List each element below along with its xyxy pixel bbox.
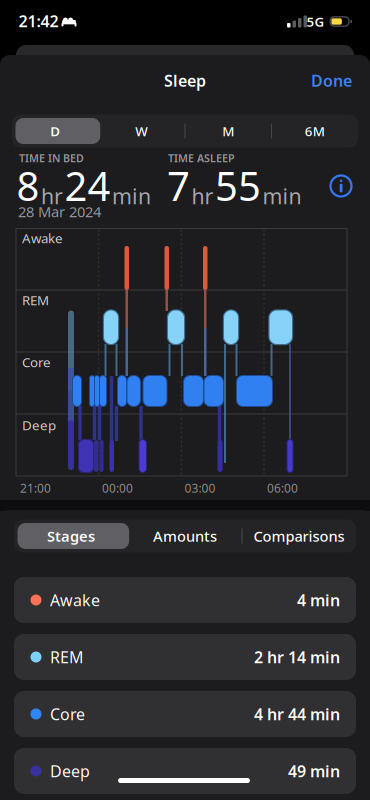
staticText: 4 min bbox=[297, 589, 340, 611]
staticText: 21:42 bbox=[18, 10, 58, 32]
staticText: 21:00 bbox=[20, 480, 51, 496]
button[interactable] bbox=[0, 0, 370, 800]
staticText: min bbox=[262, 182, 301, 210]
button[interactable]: 6M bbox=[0, 0, 370, 800]
staticText: W bbox=[135, 122, 148, 140]
staticText: Amounts bbox=[153, 526, 217, 546]
button[interactable] bbox=[0, 0, 370, 800]
staticText: Deep bbox=[22, 416, 56, 434]
button[interactable]: REM bbox=[0, 0, 370, 800]
staticText: 4 hr 44 min bbox=[254, 703, 340, 725]
staticText: 8 bbox=[16, 159, 39, 212]
staticText: min bbox=[112, 182, 151, 210]
button[interactable]: D bbox=[0, 0, 370, 800]
staticText: REM bbox=[22, 291, 49, 309]
staticText: Stages bbox=[47, 526, 95, 546]
button[interactable]: Deep bbox=[0, 0, 370, 800]
button[interactable]: M bbox=[0, 0, 370, 800]
staticText: 06:00 bbox=[267, 480, 298, 496]
button[interactable] bbox=[0, 0, 370, 800]
staticText: 03:00 bbox=[184, 480, 215, 496]
staticText: TIME ASLEEP bbox=[168, 151, 235, 165]
staticText: 28 Mar 2024 bbox=[18, 202, 101, 221]
button[interactable]: Done bbox=[0, 0, 370, 800]
staticText: 49 min bbox=[288, 760, 340, 782]
staticText: Core bbox=[50, 703, 85, 725]
staticText: Awake bbox=[22, 229, 63, 247]
staticText: 00:00 bbox=[102, 480, 133, 496]
button[interactable]: Awake bbox=[0, 0, 370, 800]
staticText: Done bbox=[311, 70, 352, 91]
staticText: 5G bbox=[306, 13, 324, 30]
staticText: 7 bbox=[167, 159, 190, 212]
staticText: Deep bbox=[50, 760, 90, 782]
staticText: 55 bbox=[215, 159, 261, 212]
staticText: TIME IN BED bbox=[19, 151, 84, 165]
button[interactable]: Amounts bbox=[0, 0, 370, 800]
staticText: 24 bbox=[64, 159, 110, 212]
staticText: D bbox=[50, 122, 60, 140]
staticText: M bbox=[222, 122, 234, 140]
staticText: hr bbox=[41, 182, 63, 210]
button[interactable]: Stages bbox=[0, 0, 370, 800]
button[interactable]: Core bbox=[0, 0, 370, 800]
staticText: 6M bbox=[305, 122, 325, 140]
staticText: Awake bbox=[50, 589, 100, 611]
staticText: hr bbox=[191, 182, 213, 210]
staticText: Sleep bbox=[164, 70, 206, 91]
staticText: REM bbox=[50, 646, 84, 668]
staticText: 2 hr 14 min bbox=[254, 646, 340, 668]
button[interactable]: W bbox=[0, 0, 370, 800]
button[interactable]: Comparisons bbox=[0, 0, 370, 800]
staticText: Comparisons bbox=[253, 526, 344, 546]
staticText: Core bbox=[22, 353, 51, 371]
